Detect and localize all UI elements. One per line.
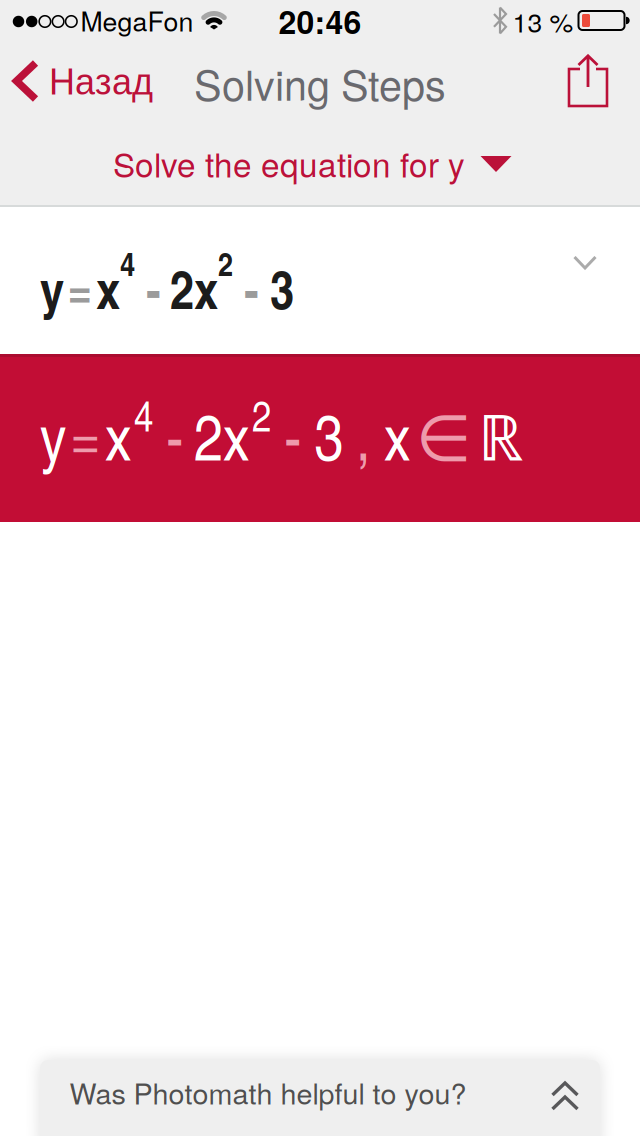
staticText: 20:46 bbox=[278, 0, 361, 44]
button[interactable]: Collapse bbox=[560, 243, 609, 283]
staticText: y = x 4 - 2x 2 - 3 , x ∈ ℝ bbox=[40, 386, 524, 478]
staticText: y = x4 - 2x2 - 3 bbox=[40, 240, 294, 324]
button[interactable]: Solve the equation for y bbox=[121, 145, 513, 189]
staticText: Solving Steps bbox=[194, 53, 446, 113]
staticText: MegaFon bbox=[80, 1, 193, 39]
staticText: Назад bbox=[49, 62, 153, 102]
button[interactable]: Was Photomath helpful to you? bbox=[40, 1060, 600, 1136]
staticText: Was Photomath helpful to you? bbox=[69, 1071, 466, 1113]
button[interactable]: Назад bbox=[11, 49, 161, 111]
staticText: Solve the equation for y bbox=[113, 139, 465, 187]
button[interactable]: Share bbox=[566, 54, 610, 108]
staticText: 13 % bbox=[512, 2, 573, 40]
